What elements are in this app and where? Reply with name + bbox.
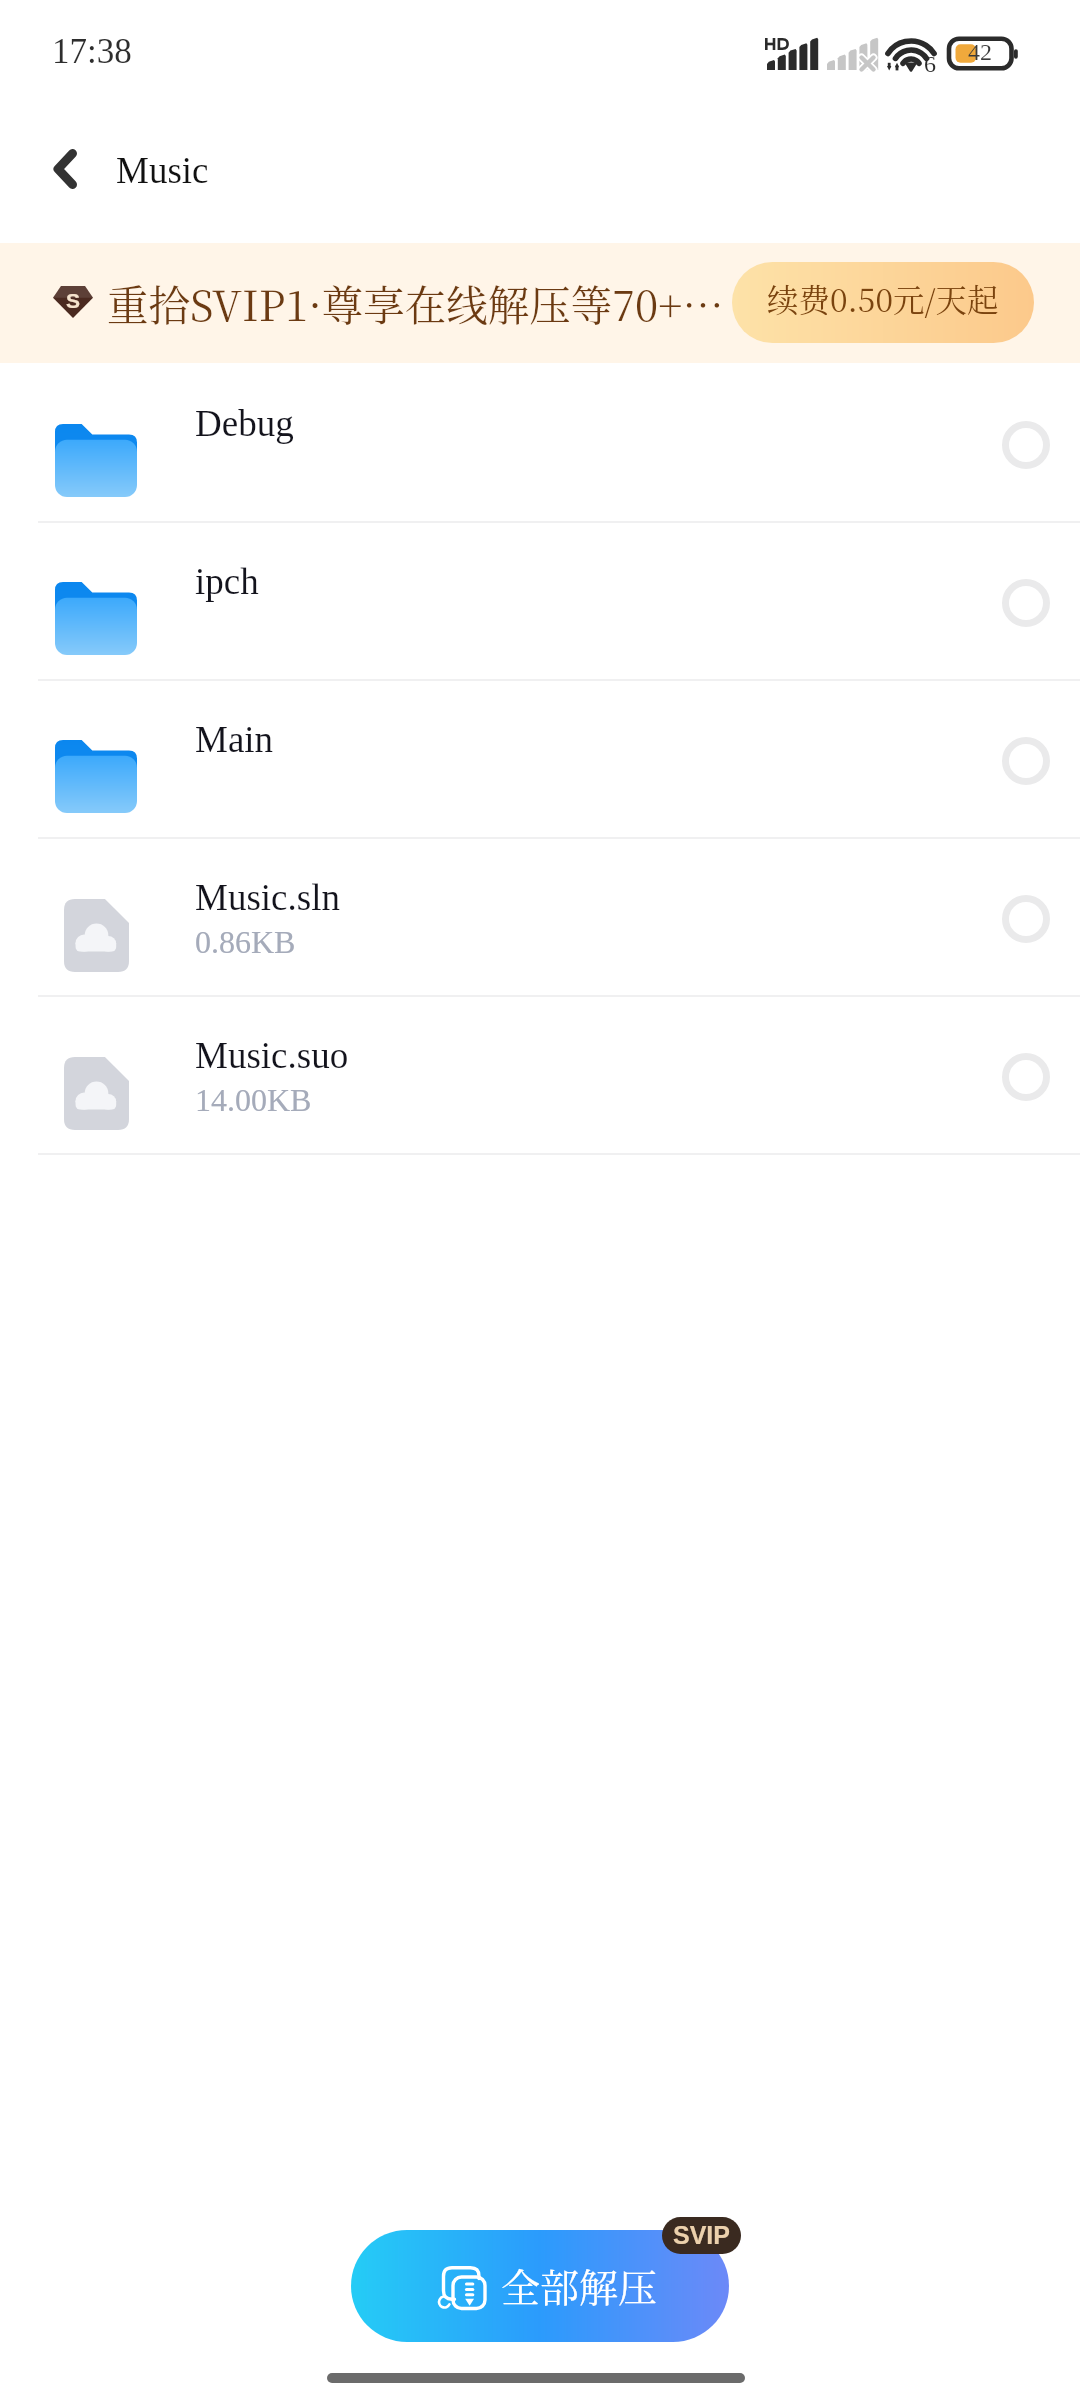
staticText: 续费0.50元/天起 bbox=[767, 276, 999, 321]
staticText: Main bbox=[195, 719, 274, 760]
staticText: Music.suo bbox=[195, 1035, 349, 1076]
button[interactable]: 全部解压 bbox=[351, 2230, 729, 2342]
staticText: S bbox=[66, 289, 81, 312]
button[interactable]: Debug bbox=[0, 365, 1080, 523]
button[interactable]: Select Music.sln bbox=[986, 879, 1066, 959]
staticText: 0.86KB bbox=[195, 924, 296, 959]
staticText: Music bbox=[116, 150, 209, 191]
button[interactable]: S bbox=[0, 243, 1080, 363]
button[interactable]: Select Main bbox=[986, 721, 1066, 801]
button[interactable]: ipch bbox=[0, 523, 1080, 681]
button[interactable]: 续费0.50元/天起 bbox=[732, 262, 1034, 343]
staticText: 全部解压 bbox=[501, 2257, 658, 2313]
staticText: Debug bbox=[195, 403, 294, 444]
button[interactable]: Select Debug bbox=[986, 405, 1066, 485]
button[interactable]: Select ipch bbox=[986, 563, 1066, 643]
button[interactable]: Main bbox=[0, 681, 1080, 839]
button[interactable]: Back bbox=[15, 119, 115, 219]
button[interactable]: Music.suo bbox=[0, 997, 1080, 1155]
staticText: 42 bbox=[968, 39, 992, 66]
button[interactable]: Select Music.suo bbox=[986, 1037, 1066, 1117]
staticText: 重拾SVIP1·尊享在线解压等70+… bbox=[107, 273, 724, 333]
button[interactable]: Music.sln bbox=[0, 839, 1080, 997]
staticText: 17:38 bbox=[52, 32, 132, 71]
staticText: Music.sln bbox=[195, 877, 340, 918]
button[interactable]: SVIP bbox=[662, 2217, 741, 2254]
staticText: ipch bbox=[195, 561, 259, 602]
staticText: 6 bbox=[924, 51, 936, 78]
staticText: SVIP bbox=[673, 2221, 730, 2249]
staticText: 14.00KB bbox=[195, 1082, 312, 1117]
